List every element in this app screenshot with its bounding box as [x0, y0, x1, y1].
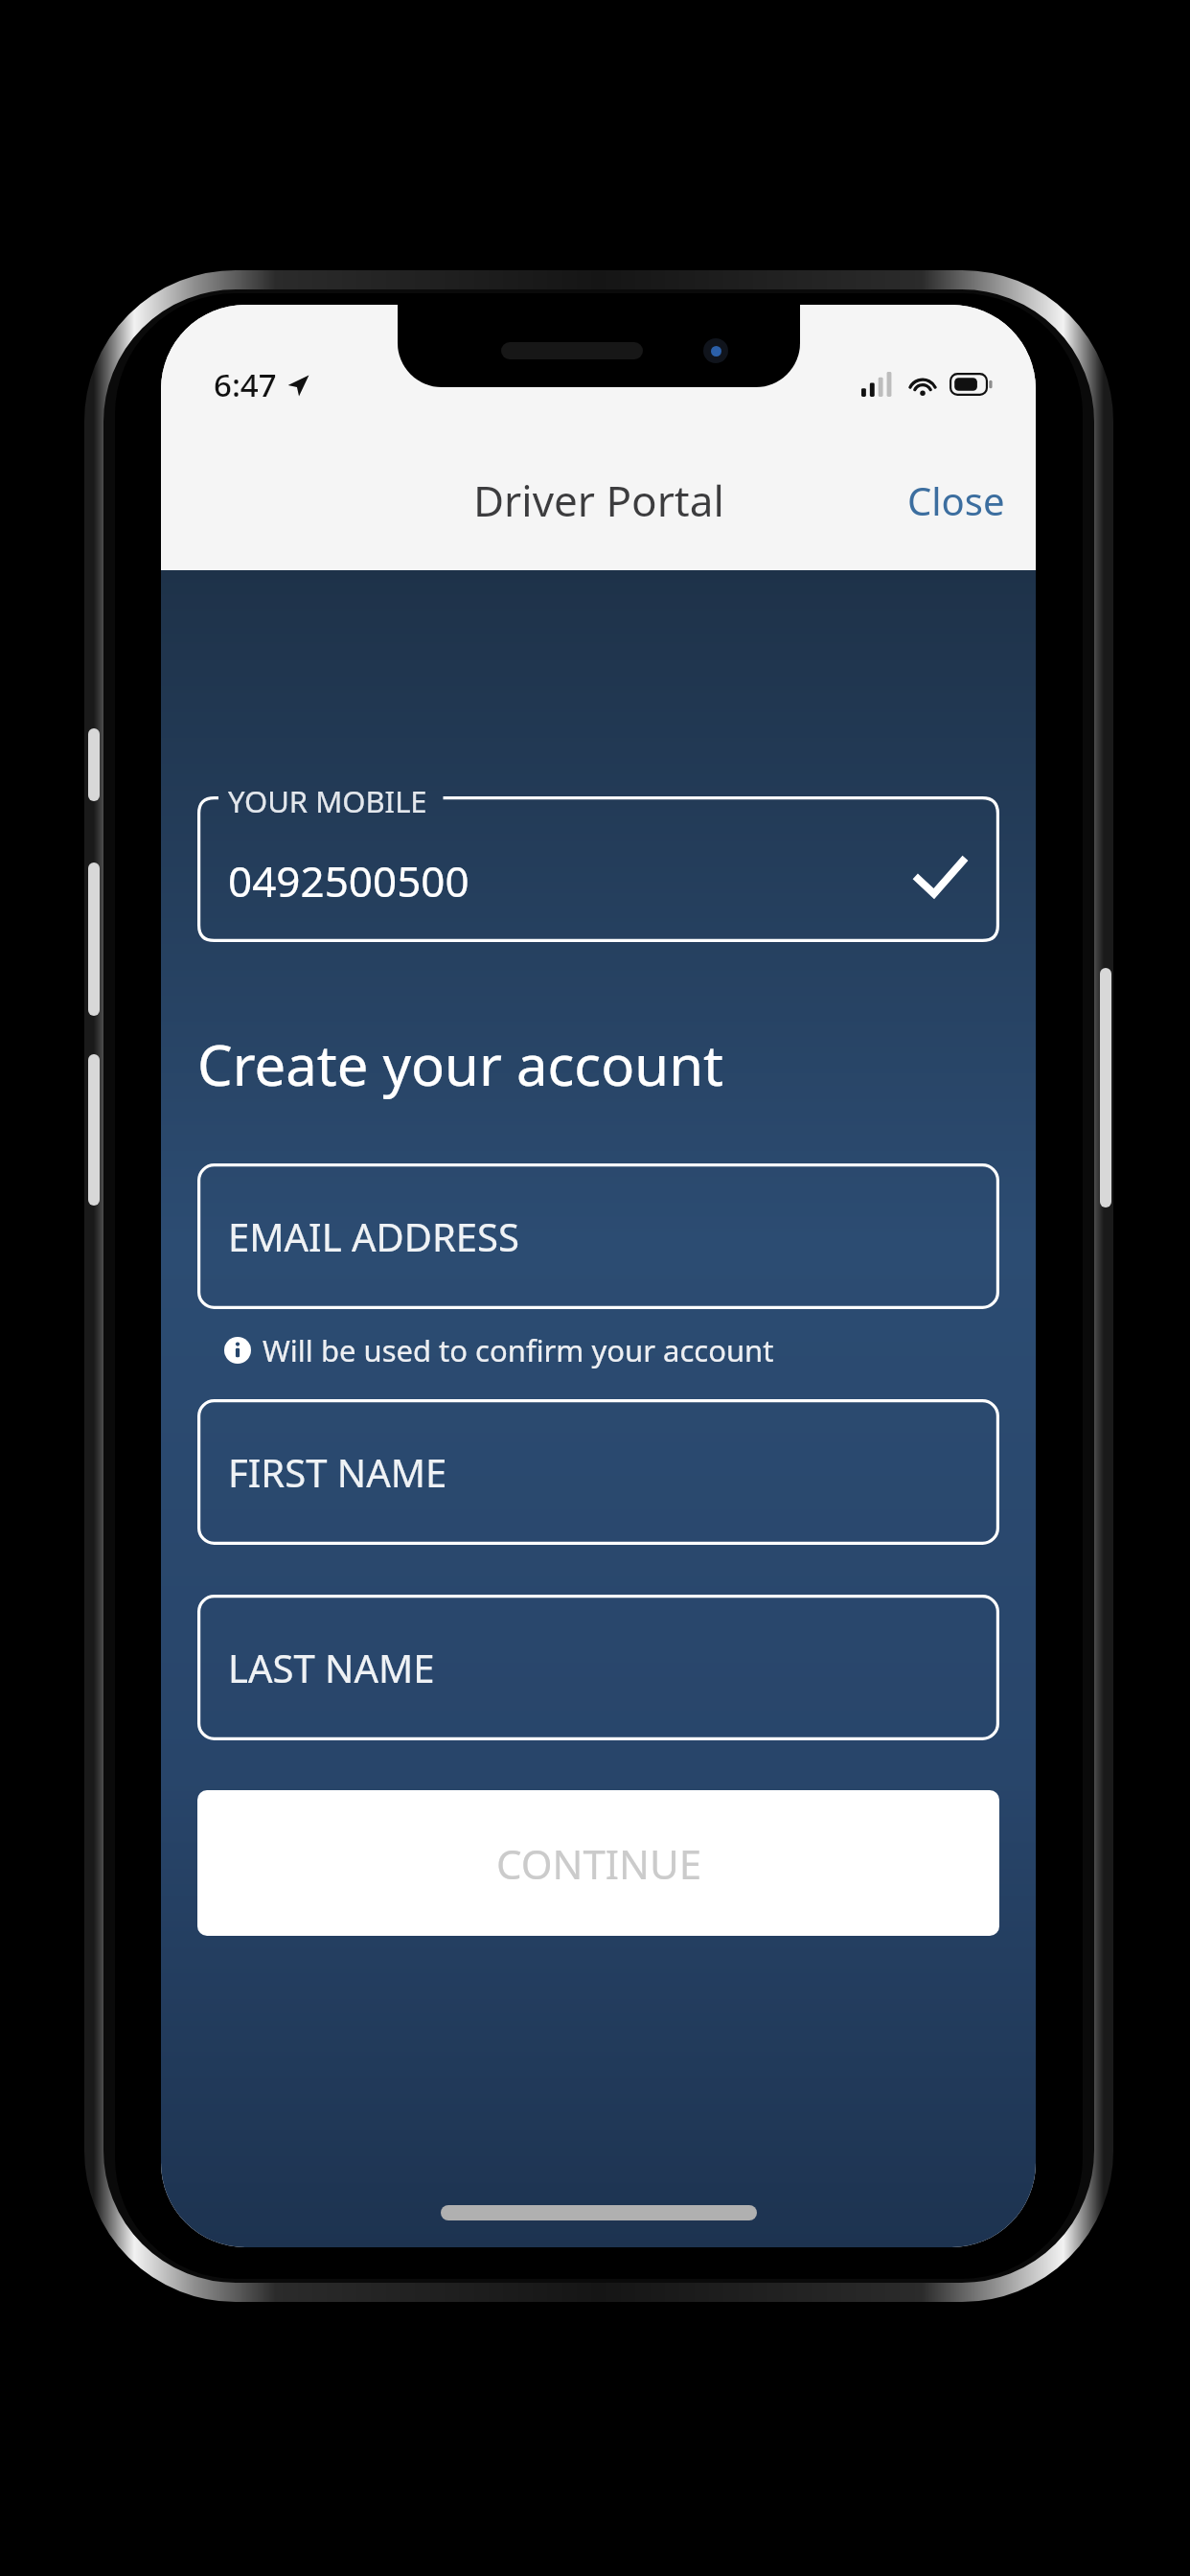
staticText: Driver Portal	[473, 471, 724, 529]
staticText: 6:47	[214, 363, 277, 406]
staticText: EMAIL ADDRESS	[228, 1210, 519, 1262]
staticText: LAST NAME	[228, 1642, 435, 1693]
staticText: CONTINUE	[496, 1836, 701, 1891]
button[interactable]: YOUR MOBILE	[197, 796, 999, 942]
button[interactable]: Close	[877, 453, 1036, 547]
button[interactable]: LAST NAME	[197, 1595, 999, 1740]
staticText: YOUR MOBILE	[228, 781, 427, 821]
staticText: Create your account	[197, 1026, 723, 1102]
staticText: Close	[907, 474, 1005, 526]
staticText: Will be used to confirm your account	[263, 1330, 774, 1370]
staticText: FIRST NAME	[228, 1446, 447, 1498]
other: Verified	[915, 854, 965, 904]
button[interactable]: FIRST NAME	[197, 1399, 999, 1545]
button[interactable]: CONTINUE	[197, 1790, 999, 1936]
button[interactable]: EMAIL ADDRESS	[197, 1163, 999, 1309]
staticText: 0492500500	[228, 852, 469, 909]
